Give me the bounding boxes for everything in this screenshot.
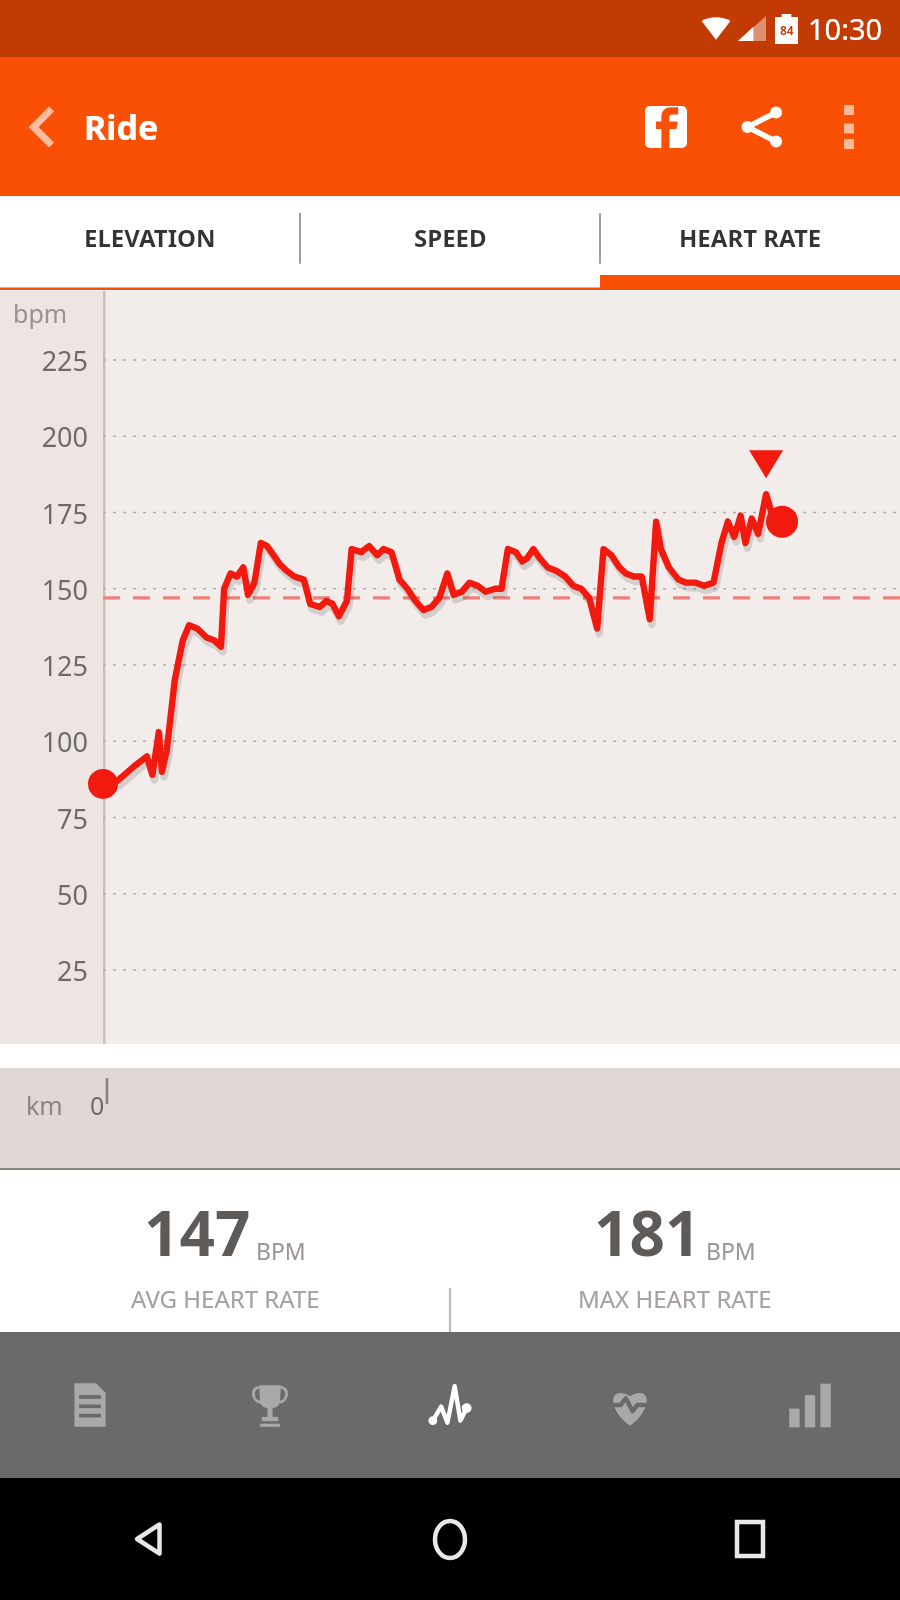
staticText: 147 — [144, 1190, 251, 1274]
staticText: 84 — [780, 22, 794, 38]
button[interactable]: Back — [0, 57, 84, 196]
staticText: 225 — [0, 342, 88, 379]
button[interactable]: More options — [810, 57, 888, 196]
button[interactable]: Share on Facebook — [618, 57, 714, 196]
button[interactable]: Analysis — [360, 1332, 540, 1478]
staticText: 100 — [0, 723, 88, 760]
button[interactable]: HEART RATE — [600, 196, 900, 290]
staticText: 25 — [0, 952, 88, 989]
staticText: 125 — [0, 647, 88, 684]
staticText: MAX HEART RATE — [578, 1282, 772, 1315]
staticText: ELEVATION — [84, 221, 216, 254]
staticText: bpm — [13, 296, 68, 330]
button[interactable]: ELEVATION — [0, 196, 300, 290]
button[interactable]: Achievements — [180, 1332, 360, 1478]
button[interactable]: Heart rate — [540, 1332, 720, 1478]
button[interactable]: Share — [714, 57, 810, 196]
staticText: 75 — [0, 800, 88, 837]
staticText: 0 — [90, 1088, 105, 1122]
staticText: 150 — [0, 571, 88, 608]
staticText: SPEED — [414, 221, 487, 254]
staticText: 10:30 — [808, 9, 883, 48]
staticText: HEART RATE — [679, 221, 822, 254]
staticText: Ride — [84, 104, 159, 150]
staticText: 181 — [594, 1190, 701, 1274]
staticText: 50 — [0, 876, 88, 913]
staticText: 200 — [0, 418, 88, 455]
button[interactable]: 181 — [450, 1170, 900, 1332]
button[interactable]: Activity details — [0, 1332, 180, 1478]
button[interactable]: SPEED — [300, 196, 600, 290]
staticText: km — [26, 1088, 63, 1122]
button[interactable]: 147 — [0, 1170, 450, 1332]
button[interactable]: Statistics — [720, 1332, 900, 1478]
staticText: BPM — [256, 1235, 306, 1266]
staticText: AVG HEART RATE — [131, 1282, 320, 1315]
staticText: BPM — [706, 1235, 756, 1266]
staticText: 175 — [0, 495, 88, 532]
